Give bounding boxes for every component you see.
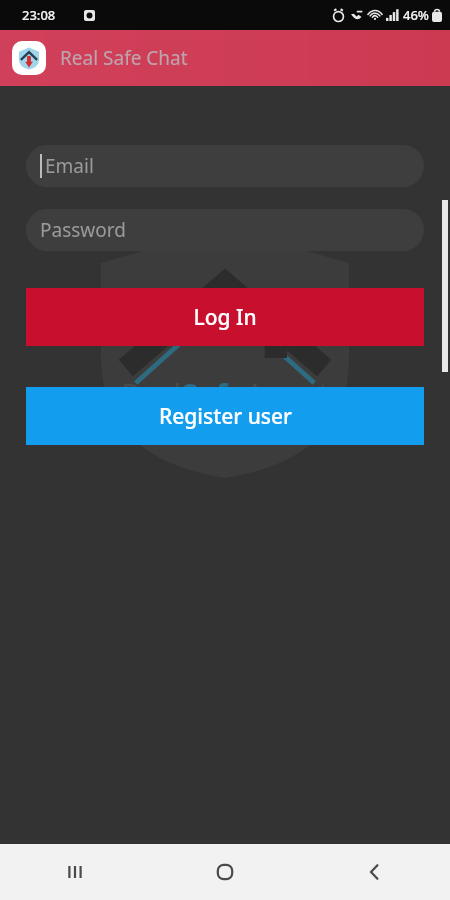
staticText: Email [45, 153, 94, 179]
button[interactable]: Back [300, 844, 450, 900]
button[interactable]: App logo [12, 41, 46, 75]
staticText: Register user [159, 402, 292, 431]
staticText: 23:08 [22, 6, 56, 24]
staticText: 46% [403, 6, 429, 24]
button[interactable]: Email [26, 145, 424, 187]
staticText: Log In [193, 303, 257, 332]
button[interactable]: Password [26, 209, 424, 251]
button[interactable]: Home [150, 844, 300, 900]
staticText: Real Safe Chat [60, 45, 188, 71]
button[interactable]: Recents [0, 844, 150, 900]
staticText: RealSafeAgent [121, 374, 330, 415]
staticText: Password [40, 217, 126, 243]
button[interactable]: Log In [26, 288, 424, 346]
button[interactable]: Register user [26, 387, 424, 445]
